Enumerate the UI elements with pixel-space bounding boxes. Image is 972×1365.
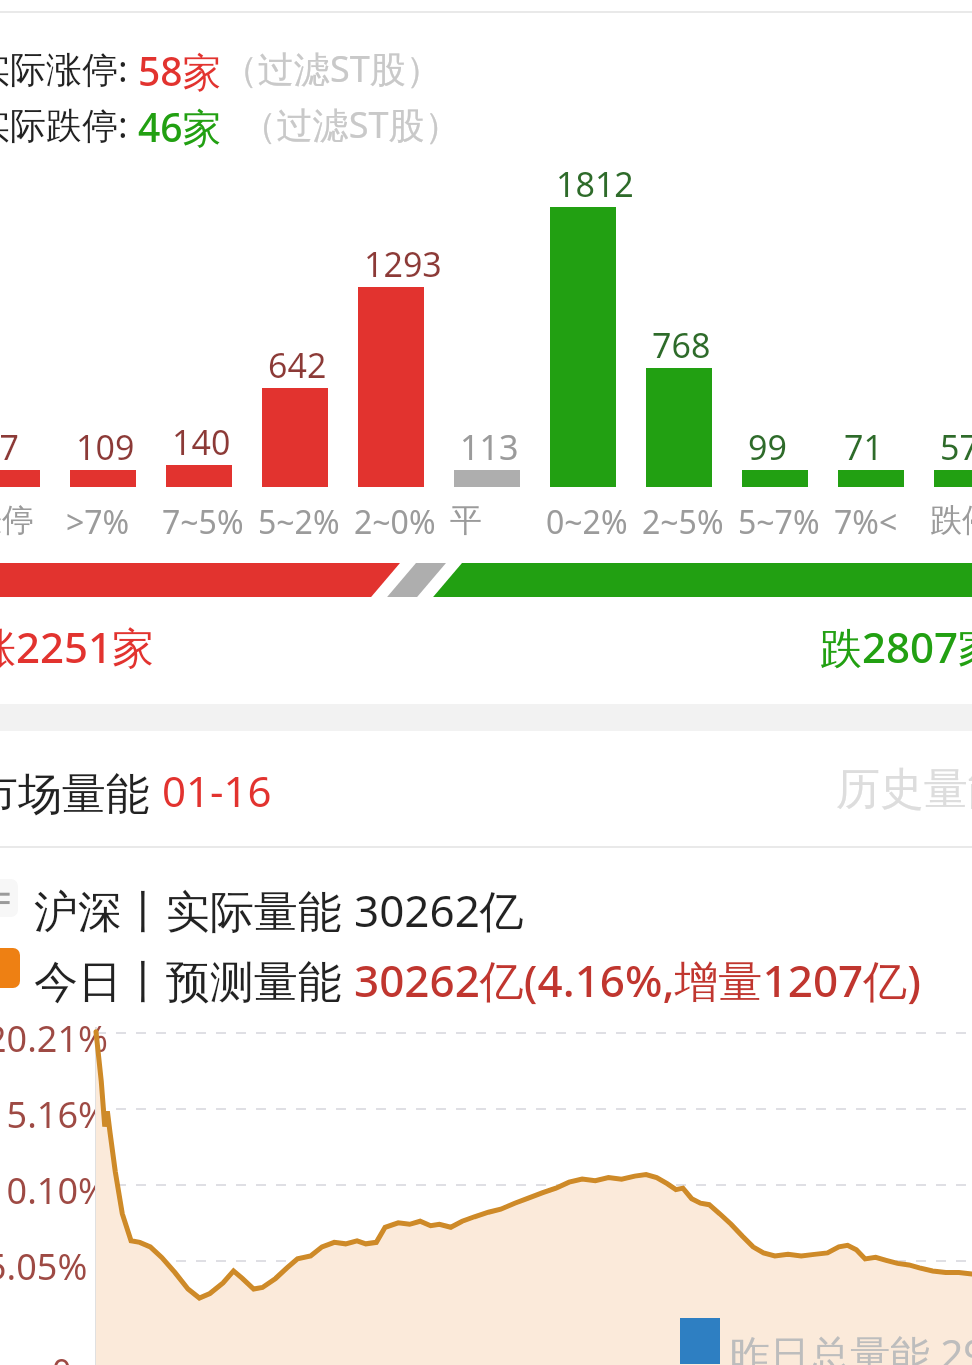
staticText: 57 (940, 424, 972, 470)
staticText: 2~5% (642, 500, 724, 544)
staticText: 沪深丨实际量能 (34, 880, 354, 940)
staticText: 140 (172, 419, 231, 465)
staticText: 0 (52, 1348, 72, 1365)
staticText: 平 (450, 500, 482, 540)
staticText: 67 (0, 424, 19, 470)
other: 沪深 (0, 879, 18, 917)
button[interactable]: 市场量能 (0, 740, 972, 830)
staticText: 58家 (138, 44, 222, 97)
staticText: 跌停 (930, 500, 972, 540)
staticText: 今日丨预测量能 (34, 950, 354, 1010)
staticText: 1293 (364, 241, 442, 287)
staticText: 99 (748, 424, 787, 470)
staticText: 10.10% (0, 1166, 108, 1215)
staticText: 46家 (138, 100, 222, 153)
staticText: 20.21% (0, 1014, 108, 1063)
staticText: 7~5% (162, 500, 244, 544)
staticText: 涨2251家 (0, 618, 155, 675)
staticText: 113 (460, 424, 519, 470)
staticText: 历史量能 (836, 762, 972, 817)
staticText: 5~2% (258, 500, 340, 544)
staticText: 30262亿 (354, 880, 524, 940)
staticText: 71 (844, 424, 883, 470)
staticText: 市场量能 (0, 762, 162, 822)
staticText: 涨停 (0, 500, 34, 540)
staticText: （过滤ST股） (222, 44, 442, 93)
staticText: 实际跌停: (0, 100, 138, 149)
staticText: （过滤ST股） (222, 100, 461, 149)
staticText: 01-16 (162, 762, 272, 819)
staticText: 109 (76, 424, 135, 470)
staticText: 15.16% (0, 1090, 108, 1139)
staticText: 0~2% (546, 500, 628, 544)
staticText: 昨日总量能 29035 (730, 1326, 972, 1365)
staticText: 5.05% (0, 1242, 88, 1291)
staticText: 30262亿(4.16%,增量1207亿) (354, 950, 921, 1010)
staticText: 1812 (556, 161, 634, 207)
staticText: >7% (66, 500, 130, 544)
staticText: 跌2807家 (820, 618, 972, 675)
staticText: 2~0% (354, 500, 436, 544)
other: 今日 (0, 948, 20, 988)
staticText: 5~7% (738, 500, 820, 544)
staticText: 实际涨停: (0, 44, 138, 93)
staticText: 7%< (834, 500, 898, 544)
staticText: 768 (652, 322, 711, 368)
staticText: 642 (268, 342, 327, 388)
